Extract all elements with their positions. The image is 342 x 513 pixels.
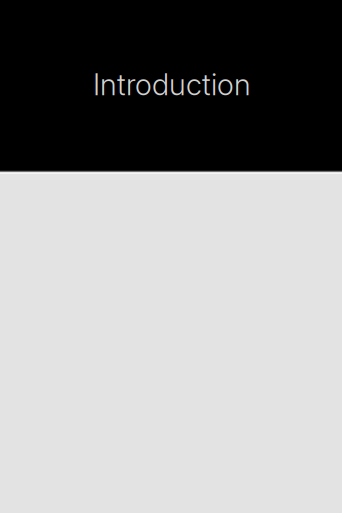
staticText: Introduction — [93, 67, 251, 102]
